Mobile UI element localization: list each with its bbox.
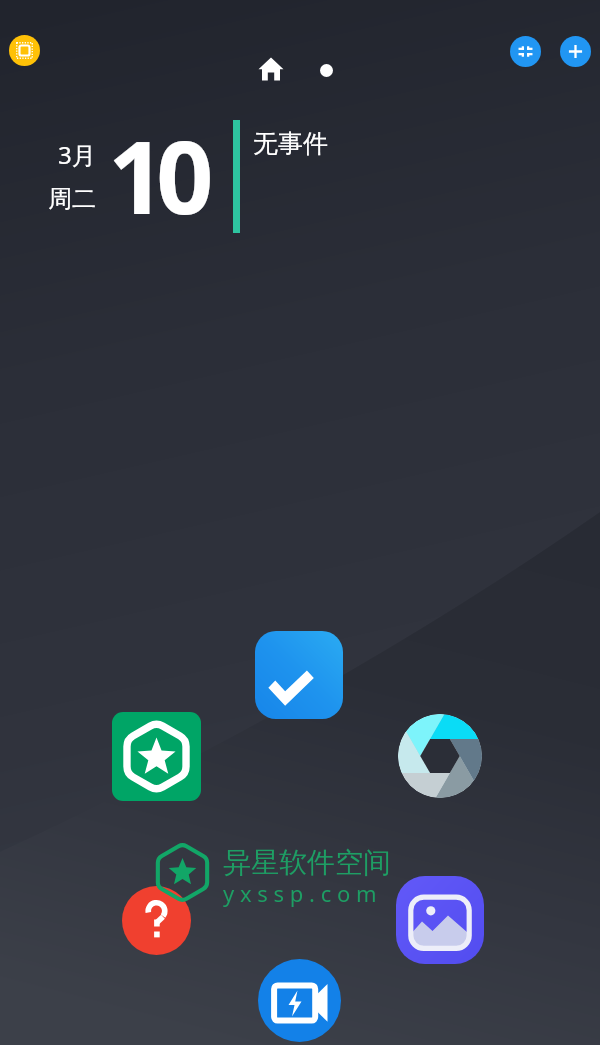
- button[interactable]: Gallery: [396, 876, 484, 964]
- button[interactable]: Add: [560, 36, 591, 67]
- button[interactable]: Collapse: [510, 36, 541, 67]
- button[interactable]: Widgets: [9, 35, 40, 66]
- staticText: 3月: [58, 138, 96, 171]
- button[interactable]: Page 2: [311, 55, 341, 85]
- button[interactable]: Calendar 3月10日 周二: [40, 115, 240, 240]
- staticText: 10: [108, 107, 205, 243]
- button[interactable]: Home: [254, 52, 288, 86]
- staticText: y x s s p . c o m: [223, 878, 377, 908]
- button[interactable]: Screen recorder: [258, 959, 341, 1042]
- button[interactable]: Tasks: [255, 631, 343, 719]
- button[interactable]: 无事件: [253, 128, 328, 159]
- staticText: 异星软件空间: [223, 845, 391, 880]
- staticText: 周二: [48, 184, 96, 214]
- button[interactable]: Security: [112, 712, 201, 801]
- button[interactable]: Help: [122, 886, 191, 955]
- button[interactable]: Camera: [398, 714, 482, 798]
